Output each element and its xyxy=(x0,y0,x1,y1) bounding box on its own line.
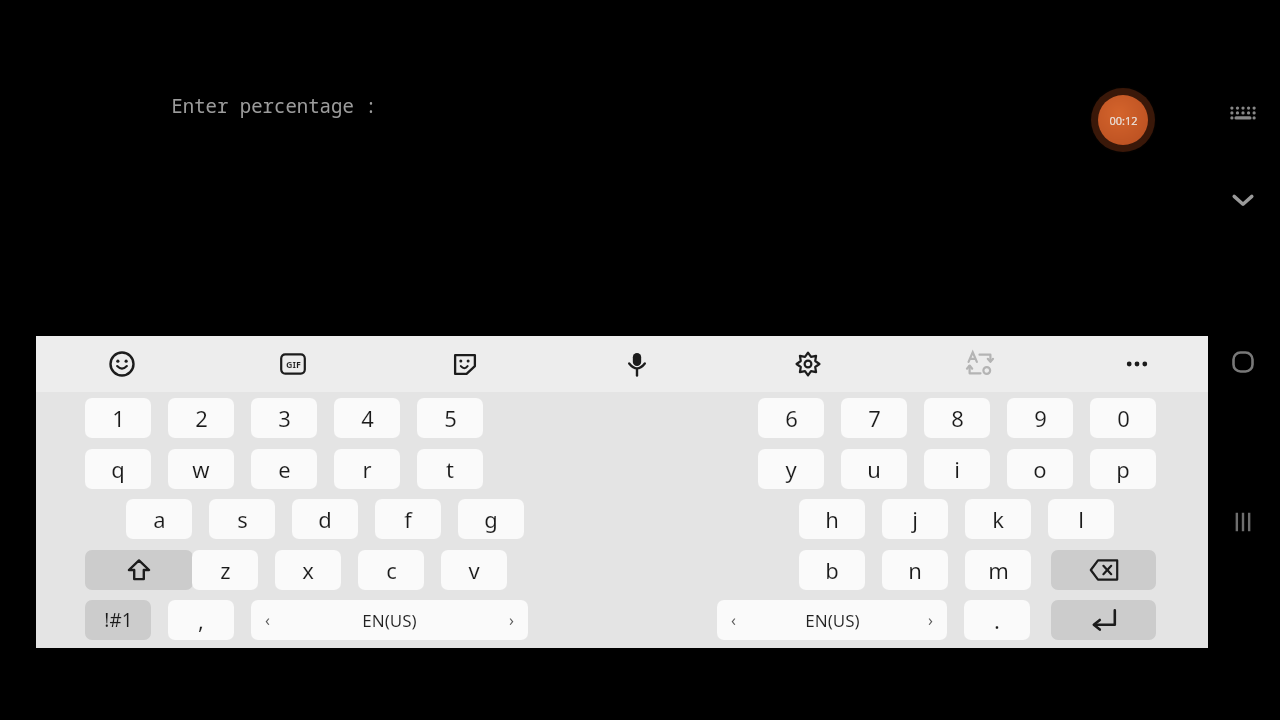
staticText: 0 xyxy=(1117,403,1130,433)
button[interactable]: ‹ xyxy=(251,600,528,640)
button[interactable]: Settings xyxy=(782,344,834,384)
staticText: c xyxy=(386,555,397,585)
staticText: g xyxy=(484,504,498,534)
staticText: l xyxy=(1078,504,1084,534)
button[interactable]: More options xyxy=(1111,344,1163,384)
staticText: e xyxy=(278,454,291,484)
staticText: n xyxy=(908,555,922,585)
button[interactable]: Show keyboard xyxy=(1221,92,1265,136)
button[interactable]: h xyxy=(799,499,865,539)
staticText: k xyxy=(992,504,1004,534)
button[interactable]: Recording timer xyxy=(1089,86,1157,154)
staticText: 7 xyxy=(868,403,881,433)
button[interactable]: e xyxy=(251,449,317,489)
button[interactable]: y xyxy=(758,449,824,489)
staticText: z xyxy=(220,555,231,585)
button[interactable]: r xyxy=(334,449,400,489)
staticText: s xyxy=(237,504,248,534)
button[interactable]: Backspace xyxy=(1051,550,1156,590)
button[interactable]: GIF xyxy=(267,344,319,384)
staticText: p xyxy=(1116,454,1130,484)
button[interactable]: a xyxy=(126,499,192,539)
button[interactable]: 3 xyxy=(251,398,317,438)
staticText: 00:12 xyxy=(1109,113,1138,128)
button[interactable]: i xyxy=(924,449,990,489)
button[interactable]: 6 xyxy=(758,398,824,438)
staticText: 1 xyxy=(112,403,125,433)
button[interactable]: Stickers xyxy=(439,344,491,384)
button[interactable]: !#1 xyxy=(85,600,151,640)
button[interactable]: g xyxy=(458,499,524,539)
button[interactable]: 4 xyxy=(334,398,400,438)
staticText: › xyxy=(509,609,514,631)
button[interactable]: 8 xyxy=(924,398,990,438)
button[interactable]: q xyxy=(85,449,151,489)
staticText: w xyxy=(192,454,210,484)
button[interactable]: n xyxy=(882,550,948,590)
staticText: j xyxy=(912,504,918,534)
button[interactable]: l xyxy=(1048,499,1114,539)
staticText: u xyxy=(867,454,881,484)
button[interactable]: 9 xyxy=(1007,398,1073,438)
staticText: !#1 xyxy=(104,607,133,633)
staticText: q xyxy=(111,454,125,484)
staticText: ‹ xyxy=(265,609,270,631)
staticText: h xyxy=(825,504,839,534)
button[interactable]: f xyxy=(375,499,441,539)
button[interactable]: z xyxy=(192,550,258,590)
button[interactable]: j xyxy=(882,499,948,539)
staticText: 6 xyxy=(785,403,798,433)
button[interactable]: 5 xyxy=(417,398,483,438)
button[interactable]: u xyxy=(841,449,907,489)
button[interactable]: . xyxy=(964,600,1030,640)
staticText: EN(US) xyxy=(362,609,417,632)
button[interactable]: 2 xyxy=(168,398,234,438)
staticText: , xyxy=(198,605,204,635)
button[interactable]: 1 xyxy=(85,398,151,438)
staticText: b xyxy=(825,555,839,585)
button[interactable]: c xyxy=(358,550,424,590)
button[interactable]: 7 xyxy=(841,398,907,438)
staticText: v xyxy=(468,555,480,585)
button[interactable]: , xyxy=(168,600,234,640)
button[interactable]: Translate xyxy=(954,344,1006,384)
staticText: i xyxy=(954,454,960,484)
button[interactable]: Home xyxy=(1221,340,1265,384)
staticText: 9 xyxy=(1034,403,1047,433)
button[interactable]: v xyxy=(441,550,507,590)
staticText: 4 xyxy=(361,403,374,433)
button[interactable]: x xyxy=(275,550,341,590)
staticText: y xyxy=(785,454,797,484)
staticText: 8 xyxy=(951,403,964,433)
button[interactable]: Voice input xyxy=(611,344,663,384)
button[interactable]: m xyxy=(965,550,1031,590)
button[interactable]: Recent apps xyxy=(1221,500,1265,544)
staticText: EN(US) xyxy=(805,609,860,632)
staticText: x xyxy=(302,555,314,585)
staticText: . xyxy=(994,605,1000,635)
button[interactable]: Enter xyxy=(1051,600,1156,640)
staticText: Enter percentage : xyxy=(171,93,377,119)
button[interactable]: s xyxy=(209,499,275,539)
button[interactable]: d xyxy=(292,499,358,539)
button[interactable]: Emoji xyxy=(96,344,148,384)
staticText: r xyxy=(362,454,372,484)
staticText: t xyxy=(446,454,454,484)
button[interactable]: o xyxy=(1007,449,1073,489)
staticText: m xyxy=(988,555,1009,585)
button[interactable]: ‹ xyxy=(717,600,947,640)
button[interactable]: w xyxy=(168,449,234,489)
button[interactable]: Shift xyxy=(85,550,193,590)
staticText: 3 xyxy=(278,403,291,433)
button[interactable]: p xyxy=(1090,449,1156,489)
staticText: ‹ xyxy=(731,609,736,631)
staticText: 5 xyxy=(444,403,457,433)
button[interactable]: t xyxy=(417,449,483,489)
button[interactable]: k xyxy=(965,499,1031,539)
staticText: o xyxy=(1033,454,1047,484)
staticText: d xyxy=(318,504,332,534)
staticText: a xyxy=(153,504,166,534)
button[interactable]: b xyxy=(799,550,865,590)
button[interactable]: 0 xyxy=(1090,398,1156,438)
button[interactable]: Hide keyboard xyxy=(1221,178,1265,222)
